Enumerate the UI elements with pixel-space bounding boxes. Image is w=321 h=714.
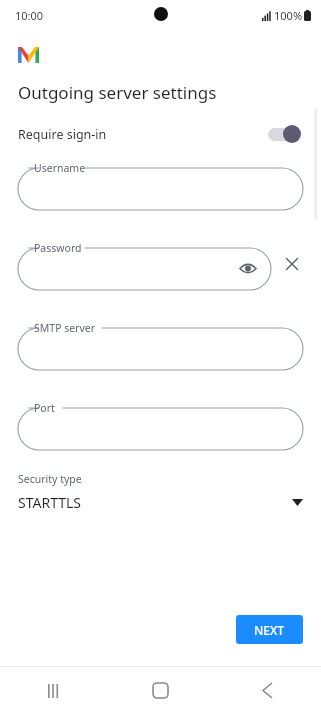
staticText: 10:00 [15,8,44,23]
button[interactable]: SMTP server [18,318,303,370]
staticText: Require sign-in [18,126,107,143]
staticText: STARTTLS [18,493,82,512]
button[interactable]: Back [214,667,321,714]
button[interactable]: Port [18,398,303,450]
staticText: Outgoing server settings [18,81,217,104]
button[interactable]: Password [18,238,271,290]
button[interactable]: Security type [0,472,321,512]
button[interactable]: Recents [0,667,107,714]
button[interactable]: Require sign-in [0,119,321,149]
button[interactable]: Home [107,667,214,714]
button[interactable]: Username [18,158,303,210]
button[interactable]: Show password [237,257,259,279]
button[interactable]: Require sign-in toggle [267,124,301,144]
staticText: Port [34,401,55,415]
staticText: Password [34,241,82,255]
staticText: Security type [18,472,82,486]
button[interactable]: NEXT [236,615,303,644]
staticText: SMTP server [34,321,96,335]
staticText: 100% [274,8,303,23]
staticText: Username [34,161,86,175]
button[interactable]: Clear password [279,251,305,277]
staticText: NEXT [254,622,285,638]
